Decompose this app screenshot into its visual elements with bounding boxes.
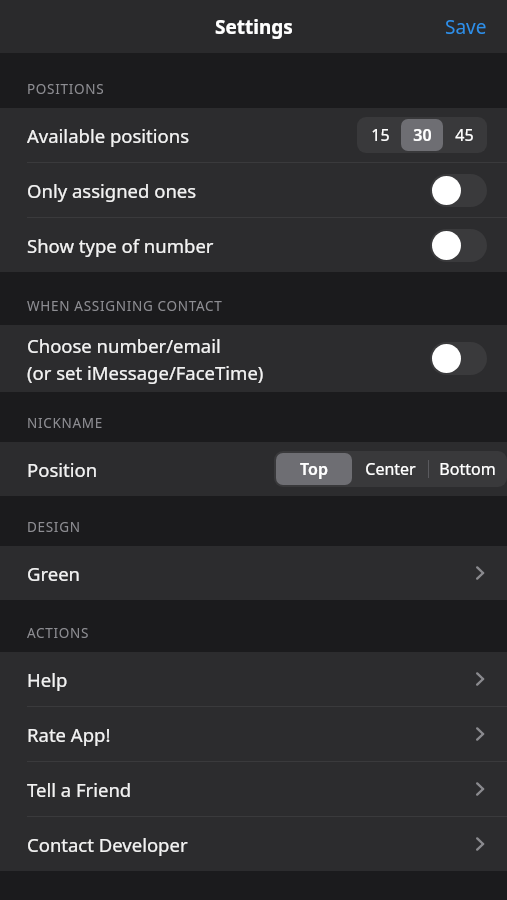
staticText: Help: [27, 667, 68, 692]
button[interactable]: Available positions: [0, 108, 507, 162]
button[interactable]: Show type of number: [0, 218, 507, 272]
staticText: 30: [413, 124, 432, 146]
button[interactable]: Only assigned ones: [0, 163, 507, 217]
button[interactable]: 30: [401, 119, 443, 151]
staticText: (or set iMessage/FaceTime): [27, 360, 264, 385]
staticText: Only assigned ones: [27, 178, 197, 203]
staticText: Green: [27, 561, 81, 586]
staticText: WHEN ASSIGNING CONTACT: [27, 297, 223, 315]
button[interactable]: 45: [443, 119, 485, 151]
button[interactable]: Tell a Friend: [0, 762, 507, 816]
staticText: Bottom: [439, 458, 496, 480]
staticText: Tell a Friend: [27, 777, 132, 802]
staticText: Position: [27, 457, 274, 482]
staticText: 15: [371, 124, 390, 146]
staticText: Save: [445, 14, 487, 40]
staticText: Rate App!: [27, 722, 111, 747]
staticText: DESIGN: [27, 518, 81, 536]
button[interactable]: Toggle: [430, 174, 487, 207]
button[interactable]: Rate App!: [0, 707, 507, 761]
button[interactable]: Bottom: [429, 453, 505, 485]
staticText: 45: [455, 124, 474, 146]
staticText: Top: [300, 458, 328, 480]
staticText: Center: [365, 458, 416, 480]
staticText: POSITIONS: [27, 80, 105, 98]
staticText: ACTIONS: [27, 624, 90, 642]
staticText: Settings: [215, 14, 293, 40]
button[interactable]: Help: [0, 652, 507, 706]
button[interactable]: Toggle: [430, 229, 487, 262]
staticText: Show type of number: [27, 233, 214, 258]
button[interactable]: Choose number/email: [0, 325, 507, 392]
staticText: NICKNAME: [27, 414, 103, 432]
staticText: Contact Developer: [27, 832, 188, 857]
button[interactable]: Green: [0, 546, 507, 600]
button[interactable]: 15: [359, 119, 401, 151]
button[interactable]: Toggle: [430, 342, 487, 375]
button[interactable]: Top: [276, 453, 352, 485]
button[interactable]: Center: [352, 453, 428, 485]
staticText: Available positions: [27, 123, 190, 148]
button[interactable]: Position: [0, 442, 507, 496]
staticText: Choose number/email: [27, 333, 221, 358]
button[interactable]: Contact Developer: [0, 817, 507, 871]
button[interactable]: Save: [425, 4, 507, 50]
